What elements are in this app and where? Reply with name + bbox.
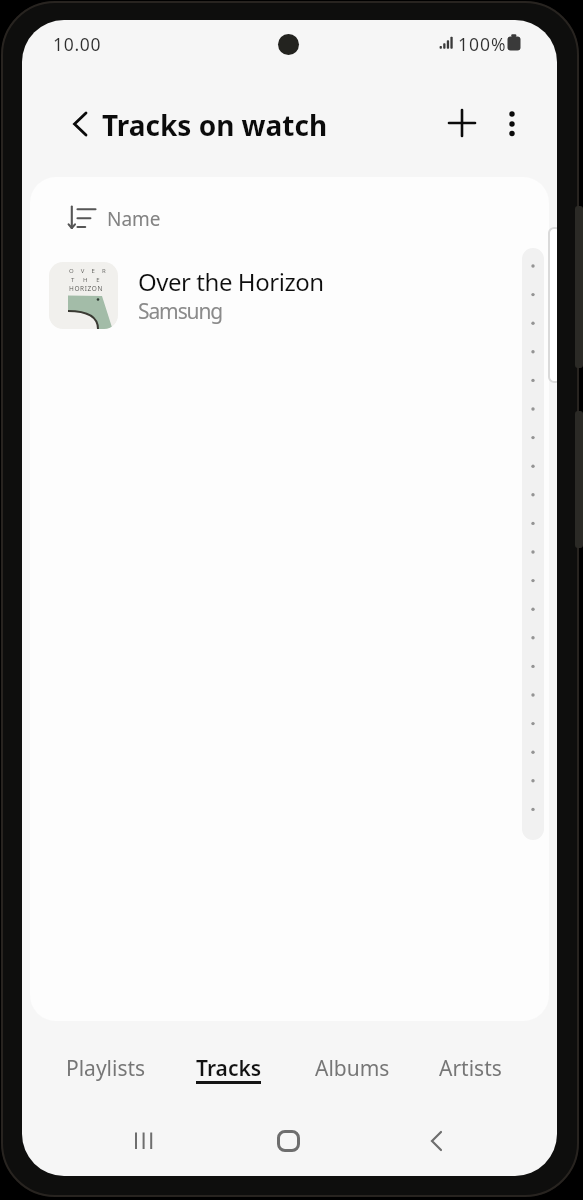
staticText: Artists	[439, 1054, 502, 1083]
button[interactable]	[449, 110, 475, 136]
button[interactable]: Albums	[315, 1054, 390, 1083]
staticText: Name	[107, 206, 161, 232]
staticText: O V E R	[69, 267, 109, 275]
staticText: 100%	[458, 32, 507, 56]
button[interactable]: Playlists	[66, 1054, 146, 1083]
button[interactable]	[277, 1130, 300, 1152]
button[interactable]	[71, 111, 91, 137]
staticText: T H E	[71, 276, 104, 284]
staticText: Tracks on watch	[102, 106, 328, 144]
button[interactable]	[427, 1130, 445, 1152]
staticText: Over the Horizon	[138, 265, 324, 298]
button[interactable]	[505, 108, 519, 140]
staticText: Tracks	[196, 1054, 262, 1083]
button[interactable]: Tracks	[196, 1054, 262, 1083]
staticText: Playlists	[66, 1054, 146, 1083]
button[interactable]: Name	[60, 197, 200, 239]
button[interactable]	[130, 1130, 158, 1152]
button[interactable]: O V E R	[30, 257, 520, 337]
button[interactable]: Artists	[439, 1054, 502, 1083]
staticText: HORIZON	[69, 284, 104, 293]
staticText: 10.00	[53, 32, 102, 56]
staticText: Samsung	[138, 297, 223, 326]
staticText: Albums	[315, 1054, 390, 1083]
